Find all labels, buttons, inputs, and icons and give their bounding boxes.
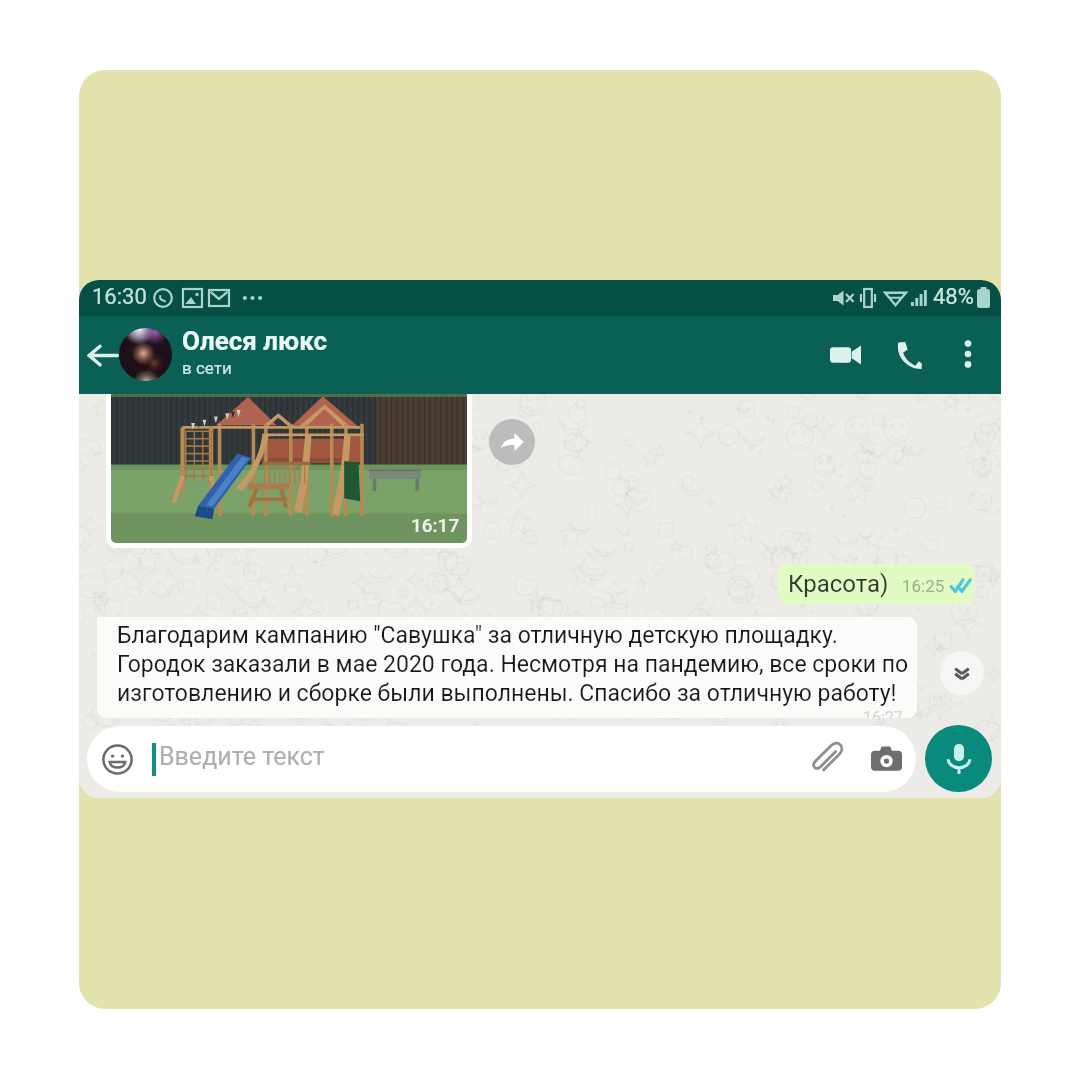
- staticText: 16:30: [92, 284, 147, 310]
- button[interactable]: More options: [948, 334, 988, 374]
- button[interactable]: Attach: [807, 740, 845, 778]
- staticText: Олеся люкс: [182, 326, 328, 356]
- staticText: Красота): [788, 570, 889, 598]
- button[interactable]: Profile photo: [119, 328, 172, 381]
- button[interactable]: Благодарим кампанию "Савушка" за отличну…: [97, 617, 917, 718]
- button[interactable]: Record voice message: [925, 725, 992, 792]
- staticText: в сети: [182, 358, 232, 378]
- button[interactable]: 16:17: [106, 394, 472, 548]
- button[interactable]: Video call: [823, 333, 867, 377]
- button[interactable]: Красота): [778, 564, 974, 604]
- staticText: 16:25: [902, 576, 945, 596]
- button[interactable]: Forward: [489, 419, 535, 465]
- button[interactable]: Camera: [867, 740, 905, 778]
- staticText: 16:17: [411, 514, 460, 536]
- staticText: 48%: [933, 284, 974, 310]
- button[interactable]: Scroll to bottom: [940, 651, 984, 695]
- button[interactable]: Call: [886, 333, 930, 377]
- button[interactable]: Back: [80, 333, 124, 377]
- staticText: Благодарим кампанию "Савушка" за отличну…: [117, 622, 909, 706]
- staticText: Введите текст: [159, 742, 325, 771]
- button[interactable]: Введите текст: [87, 726, 916, 792]
- staticText: 16:27: [863, 708, 903, 718]
